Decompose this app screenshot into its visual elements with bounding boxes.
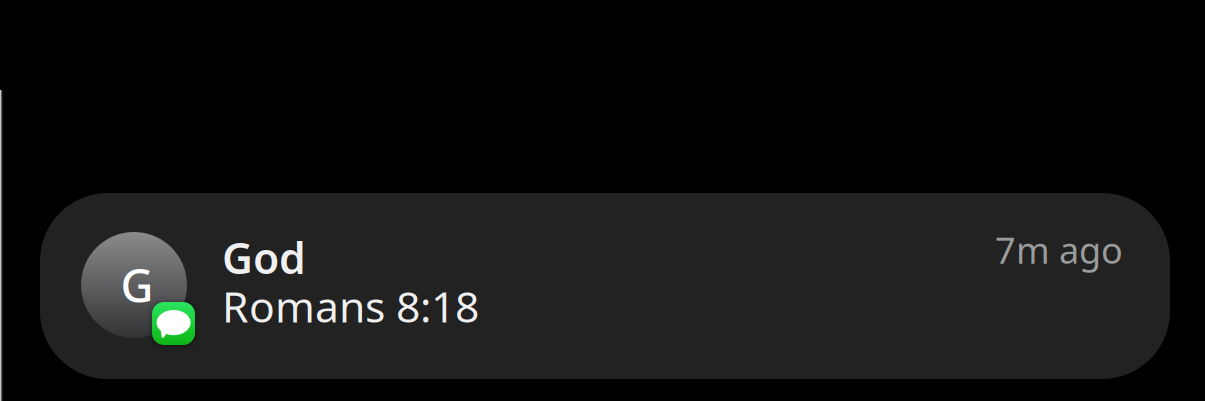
staticText: 7m ago <box>995 226 1123 274</box>
staticText: God <box>222 229 306 286</box>
button[interactable]: G <box>40 193 1170 379</box>
staticText: Romans 8:18 <box>222 278 479 334</box>
staticText: G <box>120 255 153 315</box>
